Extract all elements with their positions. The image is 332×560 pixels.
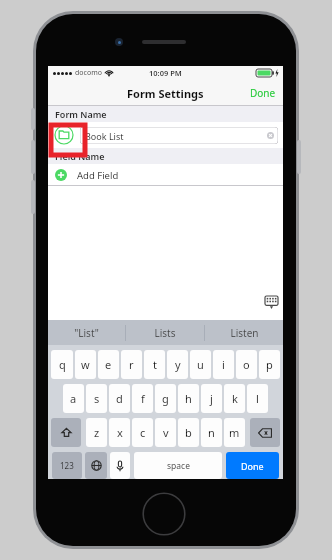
button[interactable]: v (155, 418, 176, 447)
staticText: e (105, 357, 112, 372)
button[interactable]: w (75, 350, 96, 379)
staticText: Form Name (55, 108, 107, 120)
button[interactable]: Add Field (48, 164, 283, 186)
staticText: c (140, 425, 146, 440)
staticText: b (185, 425, 192, 440)
button[interactable]: Form icon (54, 125, 74, 145)
staticText: o (243, 357, 250, 372)
staticText: y (175, 357, 181, 372)
button[interactable]: Lists (126, 320, 204, 345)
button[interactable]: Shift (51, 418, 81, 447)
button[interactable]: "List" (48, 320, 125, 345)
staticText: Done (250, 86, 276, 100)
staticText: Lists (154, 326, 176, 340)
button[interactable]: q (51, 350, 73, 379)
staticText: l (256, 391, 259, 406)
button[interactable]: x (109, 418, 130, 447)
button[interactable]: p (259, 350, 280, 379)
staticText: 10:09 PM (149, 68, 182, 78)
button[interactable]: i (213, 350, 234, 379)
button[interactable]: Hide keyboard (263, 294, 279, 310)
staticText: space (167, 460, 190, 472)
button[interactable]: Book List (80, 127, 278, 144)
staticText: Form Settings (127, 86, 204, 101)
button[interactable]: t (144, 350, 165, 379)
button[interactable]: d (109, 384, 130, 413)
staticText: t (153, 357, 157, 372)
staticText: q (59, 357, 66, 372)
staticText: 123 (60, 460, 74, 471)
button[interactable]: f (132, 384, 153, 413)
staticText: p (266, 357, 273, 372)
staticText: i (222, 357, 225, 372)
button[interactable]: c (132, 418, 153, 447)
button[interactable]: j (201, 384, 222, 413)
button[interactable]: g (155, 384, 176, 413)
button[interactable]: Dictation (110, 452, 130, 479)
button[interactable]: a (63, 384, 84, 413)
staticText: s (94, 391, 100, 406)
staticText: Book List (85, 130, 124, 142)
button[interactable]: 123 (52, 452, 82, 479)
button[interactable]: b (178, 418, 199, 447)
button[interactable]: space (134, 452, 222, 479)
staticText: m (229, 425, 240, 440)
staticText: Listen (230, 326, 259, 340)
button[interactable]: Done (226, 452, 279, 479)
button[interactable]: s (86, 384, 107, 413)
staticText: z (94, 425, 100, 440)
staticText: a (70, 391, 77, 406)
button[interactable]: m (224, 418, 245, 447)
staticText: w (81, 357, 90, 372)
staticText: g (162, 391, 169, 406)
button[interactable]: l (247, 384, 268, 413)
staticText: "List" (74, 326, 99, 340)
button[interactable]: Done (243, 82, 283, 104)
button[interactable]: k (224, 384, 245, 413)
button[interactable]: z (86, 418, 107, 447)
staticText: r (129, 357, 134, 372)
staticText: Add Field (77, 169, 119, 182)
button[interactable]: Backspace (250, 418, 280, 447)
staticText: f (141, 391, 145, 406)
staticText: u (197, 357, 204, 372)
staticText: v (163, 425, 169, 440)
staticText: j (210, 391, 213, 406)
button[interactable]: u (190, 350, 211, 379)
staticText: x (117, 425, 123, 440)
button[interactable]: e (98, 350, 119, 379)
button[interactable]: Switch language (85, 452, 107, 479)
staticText: n (208, 425, 215, 440)
staticText: docomo (75, 68, 102, 78)
staticText: Field Name (55, 150, 105, 162)
button[interactable]: h (178, 384, 199, 413)
staticText: d (116, 391, 123, 406)
button[interactable]: y (167, 350, 188, 379)
staticText: Done (241, 460, 264, 472)
staticText: h (185, 391, 192, 406)
button[interactable]: Listen (205, 320, 283, 345)
button[interactable]: o (236, 350, 257, 379)
button[interactable]: n (201, 418, 222, 447)
button[interactable]: r (121, 350, 142, 379)
staticText: k (232, 391, 238, 406)
